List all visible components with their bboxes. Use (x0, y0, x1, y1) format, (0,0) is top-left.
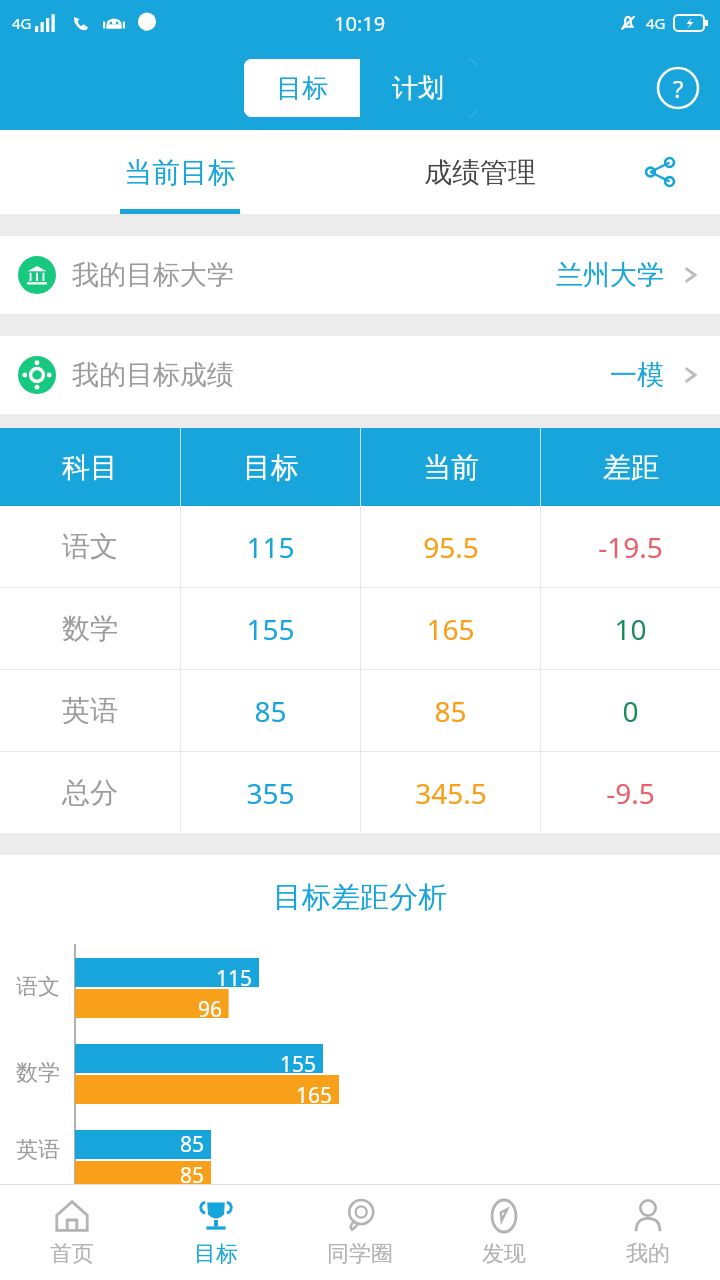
staticText: 当前 (423, 450, 479, 485)
staticText: 115 (246, 528, 295, 566)
staticText: -19.5 (598, 528, 663, 566)
button[interactable]: 目标 (244, 59, 360, 117)
staticText: 一模 (610, 358, 664, 392)
button[interactable]: 首页 (0, 1184, 144, 1280)
staticText: 首页 (50, 1240, 94, 1268)
staticText: 165 (296, 1081, 333, 1110)
staticText: 我的 (626, 1240, 670, 1268)
button[interactable]: Share (600, 130, 720, 214)
staticText: 目标 (276, 72, 328, 105)
button[interactable]: Help (652, 62, 704, 114)
staticText: 目标 (194, 1240, 238, 1268)
button[interactable]: 我的 (576, 1184, 720, 1280)
staticText: 85 (180, 1161, 205, 1184)
staticText: 语文 (16, 973, 60, 1001)
staticText: 我的目标成绩 (72, 358, 234, 392)
staticText: 发现 (482, 1240, 526, 1268)
staticText: 355 (246, 774, 295, 812)
staticText: 当前目标 (124, 155, 236, 190)
staticText: -9.5 (606, 774, 655, 812)
button[interactable]: 当前目标 (0, 130, 360, 214)
button[interactable]: 成绩管理 (360, 130, 600, 214)
staticText: 85 (254, 692, 287, 730)
staticText: 目标差距分析 (273, 879, 447, 916)
staticText: 科目 (62, 450, 118, 485)
staticText: 165 (426, 610, 475, 648)
staticText: 总分 (62, 775, 118, 810)
button[interactable]: 同学圈 (288, 1184, 432, 1280)
button[interactable]: 目标 (144, 1184, 288, 1280)
staticText: 数学 (16, 1059, 60, 1087)
staticText: 0 (622, 692, 639, 730)
staticText: 10:19 (334, 10, 386, 37)
staticText: 96 (198, 995, 223, 1024)
staticText: 345.5 (415, 774, 487, 812)
staticText: 目标 (243, 450, 299, 485)
staticText: 115 (216, 964, 253, 993)
staticText: 同学圈 (327, 1240, 393, 1268)
staticText: 155 (280, 1050, 317, 1079)
staticText: 数学 (62, 611, 118, 646)
staticText: 语文 (62, 529, 118, 564)
button[interactable]: 我的目标成绩 (0, 336, 720, 414)
staticText: 95.5 (423, 528, 479, 566)
staticText: 我的目标大学 (72, 258, 234, 292)
staticText: 兰州大学 (556, 258, 664, 292)
button[interactable]: 发现 (432, 1184, 576, 1280)
staticText: 4G (12, 13, 32, 33)
staticText: 英语 (62, 693, 118, 728)
staticText: 85 (434, 692, 467, 730)
staticText: 差距 (603, 450, 659, 485)
staticText: 4G (646, 13, 666, 33)
staticText: 成绩管理 (424, 155, 536, 190)
staticText: 155 (246, 610, 295, 648)
staticText: 85 (180, 1130, 205, 1159)
staticText: 计划 (392, 72, 444, 105)
staticText: 10 (614, 610, 647, 648)
button[interactable]: 我的目标大学 (0, 236, 720, 314)
button[interactable]: 计划 (360, 59, 476, 117)
staticText: 英语 (16, 1136, 60, 1164)
staticText: ? (673, 72, 684, 105)
